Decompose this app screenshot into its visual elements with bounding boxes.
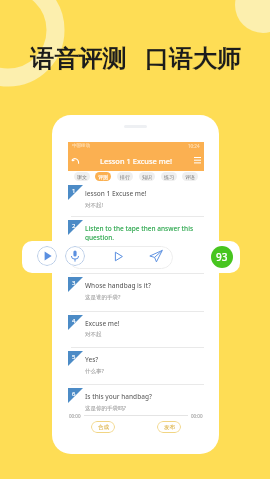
button[interactable]: 2 [68, 217, 204, 274]
staticText: 练习 [164, 174, 174, 180]
staticText: 中国移动 [72, 143, 90, 149]
staticText: 4 [72, 317, 76, 325]
staticText: 知识 [142, 174, 152, 180]
staticText: 合成 [98, 424, 109, 431]
staticText: 6 [72, 390, 76, 398]
staticText: Whose handbag is it? [85, 281, 151, 290]
staticText: Is this your handbag? [85, 392, 152, 401]
button[interactable]: 知识 [139, 172, 155, 181]
staticText: 这是你的手袋吗? [85, 404, 126, 412]
staticText: 3 [72, 279, 76, 287]
button[interactable]: 排行 [117, 172, 133, 181]
staticText: 排行 [120, 174, 130, 180]
staticText: 评测 [98, 174, 108, 180]
staticText: Excuse me! [85, 319, 120, 328]
button[interactable]: Play recording [112, 250, 125, 263]
button[interactable]: 评测 [95, 172, 111, 181]
staticText: 2 [72, 222, 76, 230]
button[interactable]: Play audio [37, 246, 57, 266]
staticText: 1 [72, 187, 76, 195]
button[interactable]: 3 [68, 274, 204, 312]
button[interactable]: 4 [68, 312, 204, 348]
staticText: Listen to the tape then answer this ques… [85, 224, 194, 242]
button[interactable]: 练习 [161, 172, 177, 181]
button[interactable]: 93 [211, 246, 233, 268]
staticText: 发布 [164, 424, 175, 431]
staticText: 93 [216, 250, 228, 264]
button[interactable]: 发布 [157, 421, 181, 433]
button[interactable]: 合成 [91, 421, 115, 433]
button[interactable]: Send [149, 249, 163, 263]
staticText: Lesson 1 Excuse me! [100, 156, 172, 166]
staticText: Yes? [85, 355, 99, 364]
button[interactable]: Back [68, 154, 81, 167]
staticText: 什么事? [85, 367, 104, 375]
staticText: 10:24 [188, 143, 200, 149]
staticText: 5 [72, 353, 76, 361]
staticText: 00:00 [69, 413, 81, 419]
button[interactable]: Record [65, 246, 85, 266]
staticText: 对不起! [85, 201, 103, 209]
staticText: 语音评测 口语大师 [30, 41, 241, 74]
staticText: 对不起 [85, 331, 102, 338]
staticText: 这是谁的手袋? [85, 293, 121, 301]
staticText: 00:00 [191, 413, 203, 419]
staticText: 课文 [77, 174, 87, 180]
button[interactable]: 课文 [74, 172, 90, 181]
button[interactable]: 评语 [182, 172, 198, 181]
button[interactable]: Menu [191, 154, 204, 167]
button[interactable]: 1 [68, 182, 204, 217]
staticText: 评语 [185, 174, 195, 180]
staticText: lesson 1 Excuse me! [85, 189, 147, 198]
button[interactable]: 6 [68, 385, 204, 422]
button[interactable]: 5 [68, 348, 204, 385]
